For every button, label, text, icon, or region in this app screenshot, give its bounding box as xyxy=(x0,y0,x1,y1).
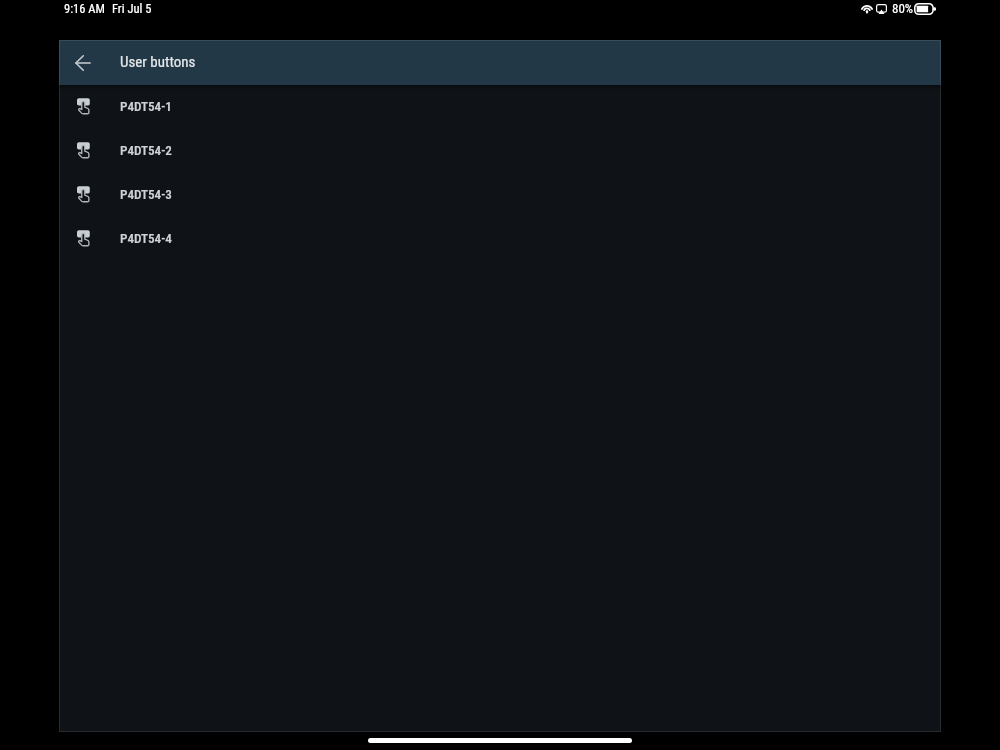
staticText: 80% xyxy=(892,1,914,16)
staticText: P4DT54-4 xyxy=(120,231,172,246)
button[interactable]: P4DT54-2 xyxy=(59,129,941,173)
button[interactable]: P4DT54-1 xyxy=(59,85,941,129)
staticText: 9:16 AM xyxy=(64,1,105,16)
button[interactable]: P4DT54-3 xyxy=(59,173,941,217)
button[interactable]: Navigate up xyxy=(66,46,99,79)
staticText: P4DT54-1 xyxy=(120,99,172,114)
staticText: P4DT54-2 xyxy=(120,143,172,158)
staticText: Fri Jul 5 xyxy=(112,1,152,16)
button[interactable]: P4DT54-4 xyxy=(59,217,941,261)
staticText: P4DT54-3 xyxy=(120,187,172,202)
staticText: User buttons xyxy=(120,53,196,71)
